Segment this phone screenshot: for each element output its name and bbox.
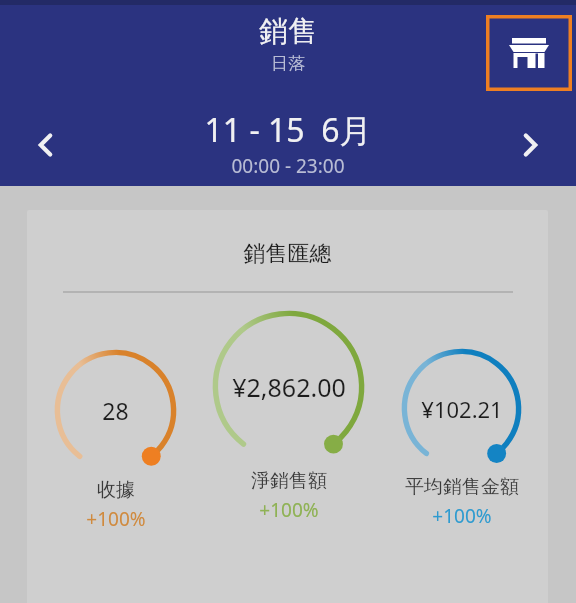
staticText: +100% (259, 497, 319, 523)
staticText: +100% (86, 506, 146, 532)
staticText: 00:00 - 23:00 (231, 153, 345, 179)
button[interactable]: Store (486, 15, 572, 91)
staticText: 淨銷售額 (251, 469, 327, 493)
staticText: 日落 (271, 53, 305, 74)
button[interactable]: Previous period (18, 118, 72, 172)
staticText: ¥2,862.00 (232, 370, 346, 404)
staticText: 11 - 15 6月 (204, 108, 372, 152)
staticText: 28 (102, 395, 129, 426)
staticText: +100% (432, 503, 492, 529)
staticText: 銷售 (259, 13, 317, 50)
button[interactable]: Next period (504, 118, 558, 172)
staticText: 收據 (97, 478, 135, 502)
button[interactable]: 銷售匯總 (27, 210, 548, 603)
staticText: ¥102.21 (421, 394, 503, 424)
staticText: 平均銷售金額 (405, 475, 519, 499)
staticText: 銷售匯總 (27, 240, 548, 268)
